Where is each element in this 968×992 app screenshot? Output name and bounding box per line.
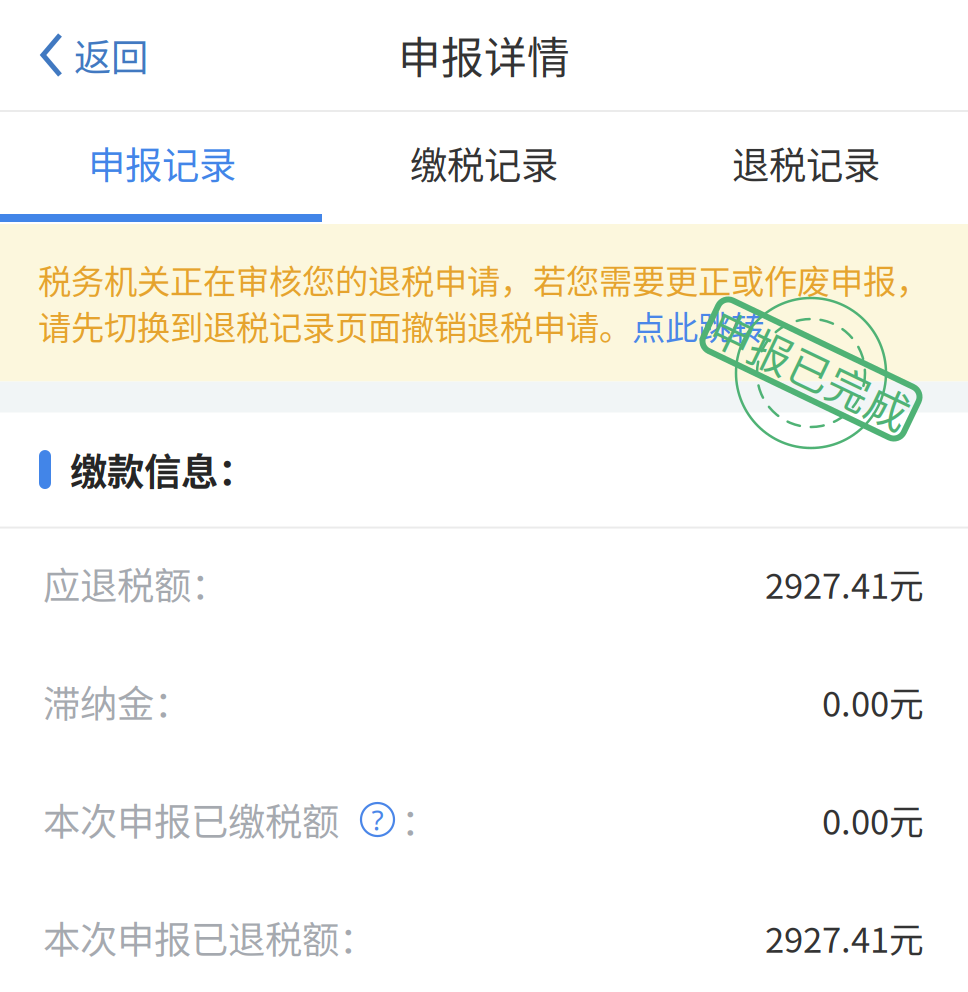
staticText: ：: [191, 556, 228, 611]
staticText: 缴款信息：: [70, 442, 255, 497]
staticText: ?: [371, 800, 383, 839]
staticText: 0.00元: [822, 794, 924, 845]
button[interactable]: 缴税记录: [323, 110, 645, 216]
staticText: 2927.41元: [765, 912, 924, 963]
staticText: 申报记录: [88, 136, 236, 190]
staticText: 申报详情: [398, 24, 570, 86]
button[interactable]: 点此跳转: [632, 301, 764, 350]
staticText: 申报已完成: [703, 338, 918, 400]
staticText: ：: [401, 792, 438, 847]
staticText: ：: [154, 674, 191, 729]
staticText: 点此跳转: [632, 301, 764, 350]
button[interactable]: 返回: [0, 12, 172, 98]
staticText: 缴税记录: [410, 136, 558, 190]
staticText: 本次申报已缴税额: [43, 792, 339, 847]
staticText: 滞纳金: [43, 674, 154, 729]
staticText: 请先切换到退税记录页面撤销退税申请。: [38, 301, 632, 350]
staticText: 税务机关正在审核您的退税申请，若您需要更正或作废申报，: [38, 255, 929, 303]
staticText: 返回: [74, 28, 148, 82]
button[interactable]: 说明: [360, 802, 395, 837]
button[interactable]: 申报记录: [1, 110, 323, 216]
staticText: 应退税额: [43, 556, 191, 611]
staticText: 本次申报已退税额: [43, 910, 339, 965]
button[interactable]: 退税记录: [645, 110, 967, 216]
staticText: ：: [339, 910, 376, 965]
staticText: 2927.41元: [765, 558, 924, 609]
staticText: 0.00元: [822, 676, 924, 727]
staticText: 退税记录: [732, 136, 880, 190]
